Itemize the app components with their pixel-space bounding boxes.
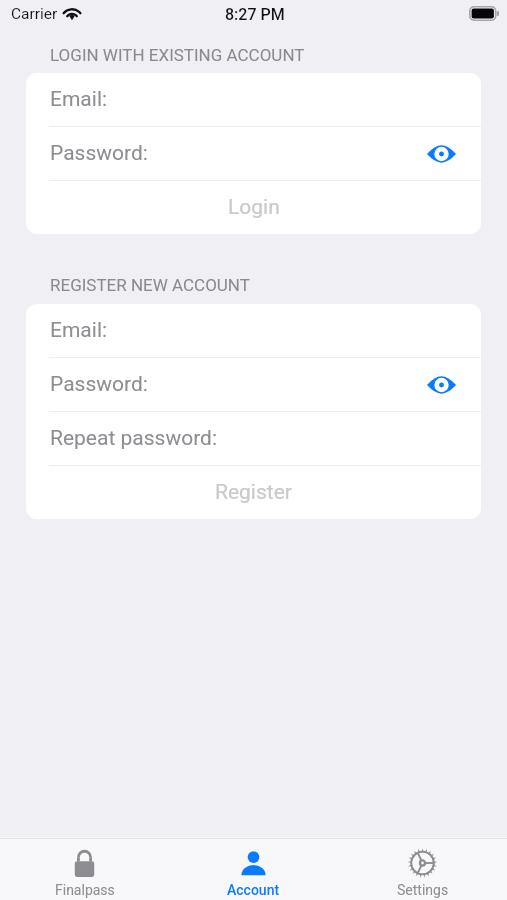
button[interactable]: Login [26,181,481,234]
button[interactable]: Password: [26,358,481,411]
button[interactable]: Show password [421,134,461,174]
button[interactable]: Email: [26,304,481,357]
staticText: Email: [50,318,108,343]
staticText: Email: [50,87,108,112]
staticText: Password: [50,141,148,166]
staticText: 8:27 PM [225,5,285,24]
staticText: LOGIN WITH EXISTING ACCOUNT [50,45,305,65]
staticText: Register [215,480,292,505]
button[interactable]: Account [169,839,338,900]
staticText: Carrier [11,5,58,23]
button[interactable]: Register [26,466,481,519]
staticText: Repeat password: [50,426,218,451]
staticText: REGISTER NEW ACCOUNT [50,275,250,295]
button[interactable]: Password: [26,127,481,180]
button[interactable]: Show password [421,365,461,405]
button[interactable]: Settings [338,839,507,900]
staticText: Account [227,882,280,898]
button[interactable]: Finalpass [0,839,169,900]
staticText: Finalpass [55,882,115,898]
button[interactable]: Email: [26,73,481,126]
button[interactable]: Repeat password: [26,412,481,465]
staticText: Settings [397,882,449,898]
staticText: Password: [50,372,148,397]
staticText: Login [228,195,280,220]
